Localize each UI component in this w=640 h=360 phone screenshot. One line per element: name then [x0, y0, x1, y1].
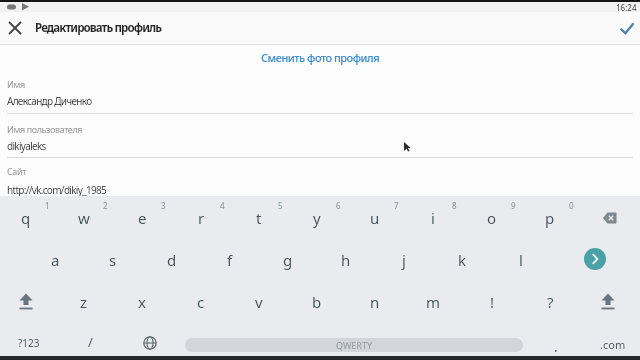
button[interactable]	[6, 19, 24, 37]
staticText: o	[487, 208, 497, 228]
button[interactable]: b	[297, 289, 337, 315]
staticText: b	[312, 292, 322, 312]
button[interactable]: y	[297, 205, 337, 231]
button[interactable]: u	[355, 205, 395, 231]
staticText: 7	[394, 200, 399, 211]
staticText: Александр Диченко	[7, 94, 92, 108]
staticText: m	[426, 292, 441, 312]
staticText: y	[313, 208, 321, 228]
button[interactable]: c	[181, 289, 221, 315]
staticText: 3	[161, 200, 166, 211]
button[interactable]: n	[355, 289, 395, 315]
button[interactable]: r	[181, 205, 221, 231]
staticText: f	[227, 250, 233, 270]
button[interactable]: g	[268, 247, 308, 273]
button[interactable]: v	[239, 289, 279, 315]
button[interactable]: QWERTY	[185, 338, 523, 352]
staticText: 5	[278, 200, 283, 211]
staticText: dikiyaleks	[7, 139, 46, 153]
staticText: 4	[220, 200, 225, 211]
button[interactable]: j	[384, 247, 424, 273]
staticText: 2	[103, 200, 108, 211]
button[interactable]	[14, 290, 38, 314]
button[interactable]: q	[6, 205, 46, 231]
staticText: !	[490, 292, 495, 312]
button[interactable]: f	[210, 247, 250, 273]
button[interactable]: k	[442, 247, 482, 273]
button[interactable]: t	[239, 205, 279, 231]
button[interactable]: s	[93, 247, 133, 273]
button[interactable]: 2	[85, 192, 125, 218]
staticText: k	[458, 250, 467, 270]
staticText: ?123	[18, 336, 40, 350]
staticText: Сайт	[7, 165, 26, 177]
button[interactable]: 8	[434, 192, 474, 218]
button[interactable]: 3	[143, 192, 183, 218]
staticText: u	[370, 208, 380, 228]
staticText: 1	[45, 200, 50, 211]
staticText: z	[80, 292, 88, 312]
button[interactable]: w	[64, 205, 104, 231]
staticText: t	[256, 208, 262, 228]
staticText: 0	[569, 200, 574, 211]
button[interactable]	[584, 248, 606, 270]
button[interactable]: .	[536, 333, 576, 359]
staticText: .com	[600, 337, 626, 352]
button[interactable]: o	[472, 205, 512, 231]
staticText: q	[21, 208, 31, 228]
button[interactable]: Сменить фото профиля	[0, 49, 640, 65]
button[interactable]: 4	[202, 192, 242, 218]
button[interactable]: ?123	[9, 330, 49, 356]
staticText: x	[138, 292, 146, 312]
staticText: l	[519, 250, 523, 270]
button[interactable]: 9	[493, 192, 533, 218]
button[interactable]: i	[413, 205, 453, 231]
staticText: 6	[336, 200, 341, 211]
staticText: 9	[511, 200, 516, 211]
staticText: .	[554, 337, 558, 356]
staticText: http://vk.com/dikiy_1985	[7, 183, 106, 197]
staticText: 8	[452, 200, 457, 211]
button[interactable]: p	[530, 205, 570, 231]
button[interactable]: .com	[593, 331, 633, 357]
staticText: Редактировать профиль	[35, 20, 162, 36]
button[interactable]: 1	[27, 192, 67, 218]
staticText: ?	[547, 292, 554, 312]
staticText: QWERTY	[336, 339, 373, 351]
staticText: s	[109, 250, 117, 270]
button[interactable]: e	[122, 205, 162, 231]
button[interactable]: ?	[530, 289, 570, 315]
button[interactable]: !	[472, 289, 512, 315]
button[interactable]: l	[501, 247, 541, 273]
button[interactable]: z	[64, 289, 104, 315]
staticText: n	[370, 292, 380, 312]
button[interactable]: 6	[318, 192, 358, 218]
staticText: r	[198, 208, 205, 228]
button[interactable]: m	[413, 289, 453, 315]
staticText: e	[138, 208, 147, 228]
staticText: i	[431, 208, 435, 228]
button[interactable]	[596, 290, 620, 314]
button[interactable]: d	[152, 247, 192, 273]
staticText: a	[51, 250, 60, 270]
staticText: g	[283, 250, 293, 270]
staticText: Имя пользователя	[7, 123, 83, 135]
staticText: w	[78, 208, 90, 228]
button[interactable]	[142, 335, 158, 351]
staticText: c	[197, 292, 205, 312]
staticText: Имя	[7, 78, 25, 90]
button[interactable]	[618, 19, 636, 37]
button[interactable]: h	[326, 247, 366, 273]
staticText: h	[341, 250, 351, 270]
staticText: v	[255, 292, 263, 312]
button[interactable]: 5	[260, 192, 300, 218]
button[interactable]: x	[122, 289, 162, 315]
button[interactable]	[594, 206, 622, 230]
staticText: 16:24	[616, 2, 637, 12]
button[interactable]: 7	[376, 192, 416, 218]
button[interactable]: a	[35, 247, 75, 273]
button[interactable]: /	[70, 329, 110, 355]
staticText: d	[167, 250, 177, 270]
staticText: /	[88, 333, 93, 351]
button[interactable]: 0	[551, 192, 591, 218]
